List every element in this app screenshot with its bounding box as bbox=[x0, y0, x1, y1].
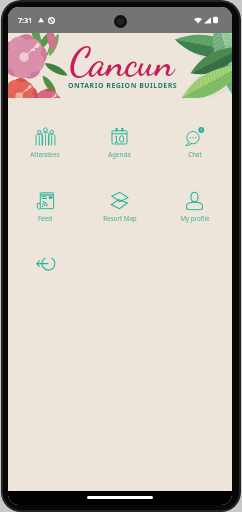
staticText: Feed bbox=[38, 214, 52, 222]
staticText: Resort Map bbox=[103, 214, 137, 222]
staticText: ONTARIO REGION BUILDERS bbox=[68, 81, 178, 91]
staticText: Cancun bbox=[69, 39, 174, 86]
staticText: 7:31 bbox=[18, 15, 33, 25]
staticText: My profile bbox=[180, 214, 210, 222]
button[interactable]: My profile bbox=[157, 182, 232, 246]
button[interactable]: Resort Map bbox=[82, 182, 157, 246]
button[interactable]: Agenda bbox=[82, 118, 157, 182]
staticText: Chat bbox=[188, 150, 202, 158]
button[interactable]: Log out bbox=[8, 246, 82, 310]
button[interactable]: Attendees bbox=[8, 118, 82, 182]
button[interactable]: Feed bbox=[8, 182, 82, 246]
button[interactable]: Chat bbox=[157, 118, 232, 182]
staticText: Attendees bbox=[30, 150, 60, 158]
staticText: Agenda bbox=[108, 150, 131, 158]
